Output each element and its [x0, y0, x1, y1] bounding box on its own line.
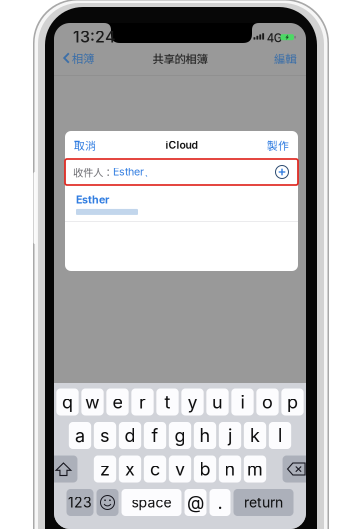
button[interactable]: x	[119, 455, 141, 482]
button[interactable]: c	[144, 455, 166, 482]
button[interactable]: 取消	[65, 132, 96, 158]
button[interactable]: v	[169, 455, 191, 482]
button[interactable]: w	[81, 388, 104, 415]
button[interactable]: g	[169, 422, 191, 449]
staticText: b	[199, 458, 210, 480]
button[interactable]: f	[144, 422, 166, 449]
button[interactable]: 編輯	[268, 43, 306, 73]
staticText: d	[124, 425, 135, 446]
button[interactable]: t	[156, 388, 179, 415]
button[interactable]: Shift	[49, 455, 77, 482]
button[interactable]: z	[94, 455, 116, 482]
staticText: Esther、	[113, 165, 155, 179]
staticText: s	[100, 425, 110, 446]
button[interactable]: r	[131, 388, 154, 415]
staticText: a	[75, 425, 85, 446]
button[interactable]: p	[281, 388, 304, 415]
button[interactable]: Delete	[282, 455, 310, 482]
button[interactable]: s	[94, 422, 116, 449]
button[interactable]: h	[194, 422, 216, 449]
button[interactable]: d	[119, 422, 141, 449]
button[interactable]: n	[219, 455, 241, 482]
button[interactable]: i	[231, 388, 254, 415]
staticText: u	[212, 391, 223, 413]
staticText: @	[187, 492, 204, 513]
staticText: i	[240, 391, 244, 413]
staticText: 相簿	[72, 50, 94, 66]
staticText: q	[62, 391, 73, 413]
button[interactable]: 製作	[267, 132, 298, 158]
button[interactable]: o	[256, 388, 279, 415]
staticText: c	[150, 458, 160, 480]
staticText: .	[217, 492, 222, 513]
staticText: return	[244, 494, 283, 511]
staticText: 123	[68, 494, 92, 511]
staticText: w	[85, 391, 100, 413]
staticText: space	[131, 494, 171, 511]
staticText: j	[228, 425, 232, 446]
button[interactable]: Esther	[65, 186, 298, 222]
staticText: t	[164, 391, 170, 413]
button[interactable]: k	[244, 422, 266, 449]
button[interactable]: m	[244, 455, 266, 482]
staticText: 取消	[74, 137, 96, 153]
staticText: k	[250, 425, 260, 446]
staticText: z	[100, 458, 110, 480]
button[interactable]: e	[106, 388, 129, 415]
button[interactable]: @	[184, 489, 206, 516]
staticText: 13:24	[73, 27, 116, 46]
staticText: o	[262, 391, 273, 413]
button[interactable]: q	[56, 388, 79, 415]
button[interactable]: l	[269, 422, 291, 449]
button[interactable]: return	[233, 489, 293, 516]
button[interactable]: y	[181, 388, 204, 415]
button[interactable]: 123	[66, 489, 93, 516]
button[interactable]: Emoji	[96, 489, 118, 516]
button[interactable]: 相簿	[54, 43, 100, 73]
staticText: 製作	[267, 137, 289, 153]
staticText: iCloud	[165, 139, 197, 151]
staticText: l	[278, 425, 282, 446]
button[interactable]: b	[194, 455, 216, 482]
staticText: Esther	[76, 193, 109, 206]
staticText: n	[224, 458, 235, 480]
staticText: g	[174, 425, 185, 446]
staticText: m	[247, 458, 263, 480]
staticText: 編輯	[274, 50, 296, 67]
staticText: y	[187, 391, 197, 413]
staticText: p	[287, 391, 298, 413]
staticText: 收件人：	[73, 164, 113, 180]
staticText: v	[175, 458, 185, 480]
staticText: h	[199, 425, 210, 446]
staticText: 4G	[267, 31, 282, 45]
staticText: 共享的相簿	[152, 50, 207, 67]
button[interactable]: Add recipient	[273, 163, 291, 181]
staticText: r	[139, 391, 146, 413]
button[interactable]: u	[206, 388, 229, 415]
staticText: x	[125, 458, 135, 480]
button[interactable]: a	[69, 422, 91, 449]
button[interactable]: space	[121, 489, 181, 516]
button[interactable]: .	[209, 489, 230, 516]
staticText: f	[151, 425, 158, 446]
staticText: e	[112, 391, 122, 413]
button[interactable]: j	[219, 422, 241, 449]
